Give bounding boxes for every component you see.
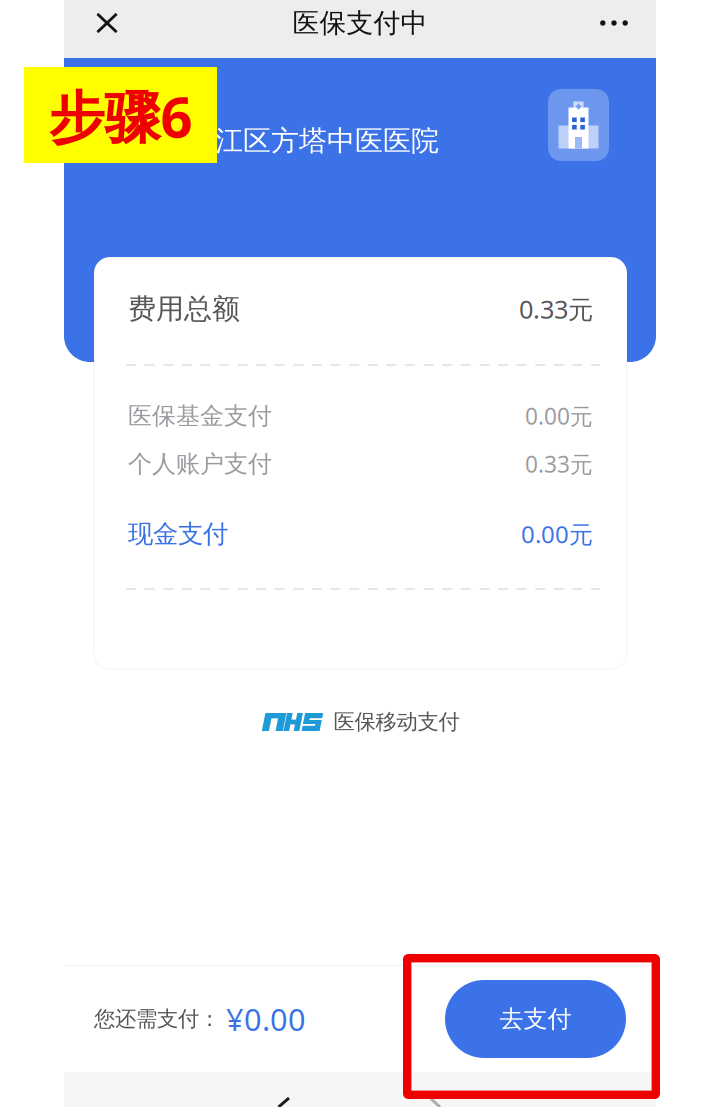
button[interactable]: 去支付	[445, 980, 626, 1058]
staticText: 去支付	[499, 1004, 571, 1034]
staticText: 0.33元	[525, 449, 593, 479]
staticText: 个人账户支付	[128, 449, 272, 479]
staticText: 上海市松江区方塔中医医院	[103, 124, 439, 158]
staticText: 医保基金支付	[128, 401, 272, 431]
staticText: 0.00元	[525, 401, 593, 431]
staticText: 步骤6	[48, 79, 192, 153]
staticText: 您还需支付：	[94, 1006, 220, 1032]
staticText: ¥0.00	[226, 999, 306, 1039]
staticText: 0.33元	[519, 292, 593, 326]
staticText: 医保移动支付	[333, 709, 459, 735]
button[interactable]: 更多	[583, 0, 645, 46]
staticText: 现金支付	[128, 518, 228, 549]
staticText: 0.00元	[521, 518, 593, 550]
button[interactable]: 关闭	[76, 0, 138, 46]
staticText: 医保支付中	[292, 7, 427, 39]
staticText: 费用总额	[128, 292, 240, 326]
